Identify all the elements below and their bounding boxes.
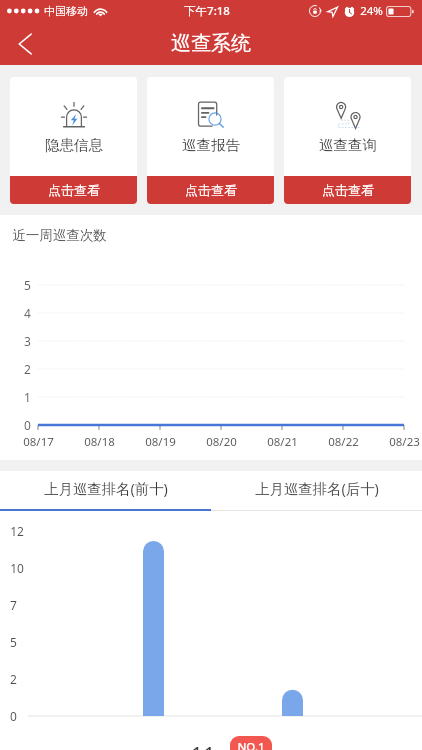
staticText: 0 bbox=[24, 417, 31, 433]
staticText: 08/18 bbox=[84, 434, 115, 450]
staticText: 5 bbox=[24, 277, 31, 293]
staticText: 08/23 bbox=[389, 434, 420, 450]
staticText: 08/17 bbox=[23, 434, 54, 450]
staticText: 10 bbox=[10, 560, 24, 576]
staticText: 中国移动 bbox=[44, 4, 88, 18]
staticText: 12 bbox=[10, 523, 24, 539]
staticText: 08/22 bbox=[328, 434, 359, 450]
staticText: 下午7:18 bbox=[184, 3, 230, 19]
staticText: 点击查看 bbox=[185, 182, 237, 198]
staticText: 1 bbox=[24, 389, 31, 405]
staticText: 24% bbox=[360, 3, 383, 19]
staticText: 巡查查询 bbox=[319, 136, 377, 154]
staticText: NO.1 bbox=[237, 739, 265, 750]
staticText: 巡查报告 bbox=[182, 136, 240, 154]
staticText: 08/19 bbox=[145, 434, 176, 450]
staticText: 点击查看 bbox=[48, 182, 100, 198]
button[interactable]: 上月巡查排名(前十) bbox=[0, 471, 211, 511]
button[interactable]: 上月巡查排名(后十) bbox=[211, 471, 422, 511]
button[interactable]: Back bbox=[5, 24, 45, 64]
staticText: 2 bbox=[10, 671, 17, 687]
staticText: 上月巡查排名(后十) bbox=[255, 479, 379, 499]
staticText: 08/21 bbox=[267, 434, 298, 450]
staticText: 点击查看 bbox=[322, 182, 374, 198]
button[interactable]: 巡查报告 bbox=[147, 77, 274, 204]
staticText: 巡查系统 bbox=[171, 31, 251, 56]
staticText: 11 bbox=[190, 739, 216, 750]
staticText: 2 bbox=[24, 361, 31, 377]
staticText: 7 bbox=[10, 597, 17, 613]
staticText: 隐患信息 bbox=[45, 136, 103, 154]
button[interactable]: 隐患信息 bbox=[10, 77, 137, 204]
staticText: 4 bbox=[24, 305, 31, 321]
staticText: 5 bbox=[10, 634, 17, 650]
staticText: 0 bbox=[10, 708, 17, 724]
staticText: 3 bbox=[24, 333, 31, 349]
button[interactable]: 巡查查询 bbox=[284, 77, 411, 204]
staticText: 上月巡查排名(前十) bbox=[44, 479, 168, 499]
staticText: 08/20 bbox=[206, 434, 237, 450]
staticText: 近一周巡查次数 bbox=[12, 227, 107, 244]
